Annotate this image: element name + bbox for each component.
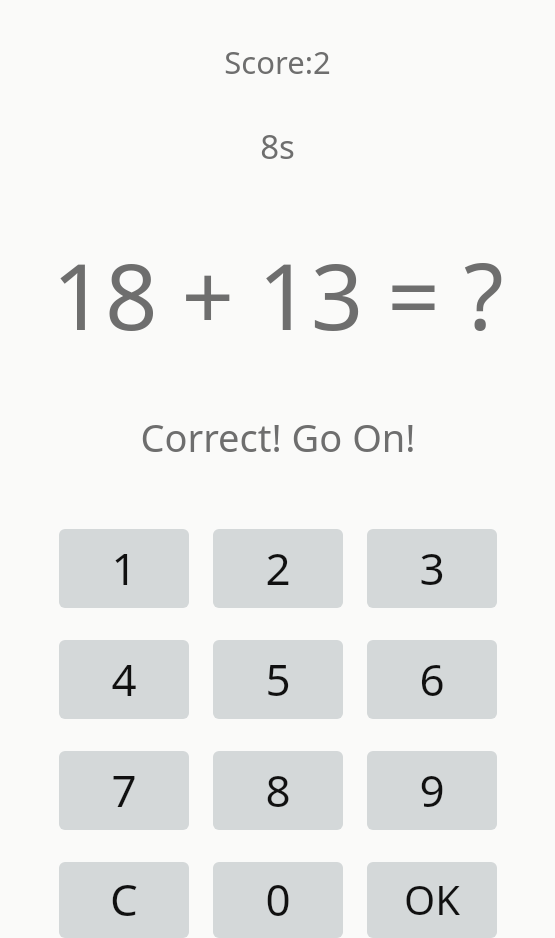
staticText: C bbox=[110, 869, 138, 929]
button[interactable]: 2 bbox=[213, 529, 343, 608]
staticText: Correct! Go On! bbox=[140, 411, 416, 463]
staticText: 8 bbox=[265, 760, 291, 820]
button[interactable]: 0 bbox=[213, 862, 343, 938]
staticText: 0 bbox=[265, 869, 291, 929]
button[interactable]: 1 bbox=[59, 529, 189, 608]
button[interactable]: 3 bbox=[367, 529, 497, 608]
staticText: 6 bbox=[419, 649, 445, 709]
staticText: 4 bbox=[111, 649, 137, 709]
button[interactable]: 7 bbox=[59, 751, 189, 830]
staticText: 9 bbox=[419, 760, 445, 820]
button[interactable]: OK bbox=[367, 862, 497, 938]
button[interactable]: 4 bbox=[59, 640, 189, 719]
staticText: 7 bbox=[111, 760, 137, 820]
staticText: 1 bbox=[111, 538, 137, 598]
staticText: 18 + 13 = ? bbox=[52, 232, 504, 357]
button[interactable]: 8 bbox=[213, 751, 343, 830]
staticText: 8s bbox=[260, 124, 295, 169]
staticText: OK bbox=[404, 872, 460, 926]
staticText: Score:2 bbox=[224, 41, 331, 83]
button[interactable]: C bbox=[59, 862, 189, 938]
staticText: 2 bbox=[265, 538, 291, 598]
button[interactable]: 5 bbox=[213, 640, 343, 719]
button[interactable]: 9 bbox=[367, 751, 497, 830]
staticText: 3 bbox=[419, 538, 445, 598]
button[interactable]: 6 bbox=[367, 640, 497, 719]
staticText: 5 bbox=[265, 649, 291, 709]
